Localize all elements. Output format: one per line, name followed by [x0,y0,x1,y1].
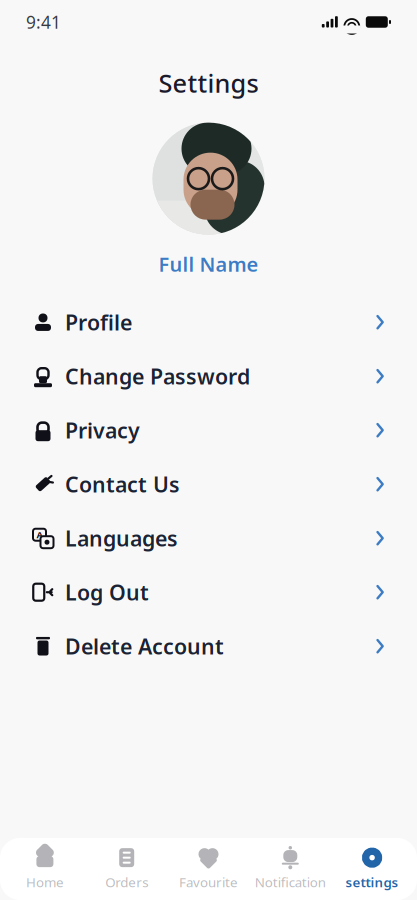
staticText: Delete Account [65,632,224,660]
staticText: Privacy [65,416,140,444]
button[interactable]: settings [331,838,413,900]
staticText: Favourite [179,873,238,891]
staticText: Orders [105,873,148,891]
staticText: Settings [158,66,258,100]
button[interactable]: Home [4,838,86,900]
button[interactable]: Delete Account [0,619,417,673]
button[interactable]: Contact Us [0,457,417,511]
staticText: Change Password [65,362,250,390]
staticText: 9:41 [26,10,61,33]
staticText: Profile [65,308,132,336]
button[interactable]: Profile [0,295,417,349]
staticText: Full Name [158,251,258,277]
button[interactable]: Change Password [0,349,417,403]
staticText: Languages [65,524,178,552]
staticText: settings [346,873,399,891]
staticText: Notification [255,873,326,891]
button[interactable]: Privacy [0,403,417,457]
staticText: A [36,528,42,541]
button[interactable]: Favourite [168,838,249,900]
button[interactable]: A [0,511,417,565]
staticText: Contact Us [65,470,180,498]
staticText: Log Out [65,578,149,606]
button[interactable]: Full Name [146,245,270,283]
staticText: Home [26,873,64,891]
button[interactable]: Orders [86,838,168,900]
button[interactable]: Log Out [0,565,417,619]
button[interactable]: Notification [249,838,331,900]
